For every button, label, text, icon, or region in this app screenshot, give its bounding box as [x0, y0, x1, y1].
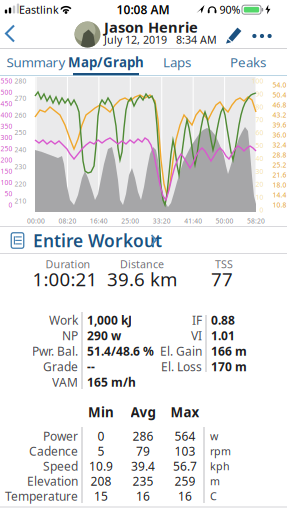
staticText: 00:00: [27, 217, 45, 225]
staticText: --: [87, 358, 95, 374]
staticText: 32.4: [272, 141, 286, 149]
staticText: Pwr. Bal.: [32, 343, 78, 359]
staticText: 39.6 km: [107, 267, 177, 291]
staticText: 235: [132, 473, 153, 489]
staticText: Min: [88, 403, 114, 421]
staticText: 300: [0, 133, 12, 142]
staticText: Max: [170, 403, 199, 421]
staticText: 39.6: [272, 121, 286, 129]
staticText: 41:40: [184, 217, 202, 225]
staticText: Cadence: [29, 443, 78, 459]
staticText: 79: [136, 443, 150, 459]
staticText: 100: [0, 178, 12, 187]
staticText: 51.4/48.6 %: [87, 343, 154, 359]
staticText: 286: [132, 428, 153, 444]
staticText: 50: [4, 189, 12, 198]
staticText: 210: [14, 197, 26, 205]
staticText: 250: [14, 128, 26, 137]
staticText: 165 m/h: [87, 374, 136, 390]
button[interactable]: Peaks: [212, 49, 283, 75]
staticText: 100: [251, 77, 263, 85]
staticText: 230: [14, 162, 26, 171]
staticText: 43.2: [272, 111, 286, 119]
staticText: NP: [62, 327, 78, 343]
button[interactable]: Edit: [221, 22, 247, 48]
staticText: 40: [255, 154, 263, 163]
staticText: 550: [0, 77, 12, 85]
staticText: VI: [191, 327, 202, 343]
staticText: 240: [14, 145, 26, 154]
staticText: 25:00: [121, 217, 139, 225]
staticText: Map/Graph: [68, 53, 144, 71]
staticText: 10: [255, 193, 263, 202]
button[interactable]: Map/Graph: [61, 49, 151, 75]
staticText: 36.0: [272, 131, 286, 139]
staticText: kph: [210, 459, 230, 473]
staticText: 21.6: [272, 171, 286, 179]
staticText: 30: [255, 167, 263, 176]
staticText: 10.9: [89, 458, 113, 474]
staticText: 46.8: [272, 101, 286, 109]
button[interactable]: Laps: [141, 49, 212, 75]
staticText: 0: [8, 200, 12, 209]
staticText: 28.8: [272, 151, 286, 159]
staticText: Speed: [43, 458, 78, 474]
staticText: 16: [136, 488, 150, 504]
staticText: 25.2: [272, 161, 286, 169]
staticText: 290 w: [87, 327, 121, 343]
staticText: Peaks: [230, 53, 266, 71]
staticText: w: [210, 429, 218, 443]
staticText: 259: [174, 473, 195, 489]
staticText: 56.7: [173, 458, 197, 474]
button[interactable]: Summary: [0, 49, 71, 75]
staticText: 20: [255, 180, 263, 189]
staticText: rpm: [210, 444, 231, 458]
button[interactable]: More: [247, 29, 277, 43]
staticText: 80: [255, 102, 263, 111]
staticText: IF: [192, 312, 202, 328]
staticText: 220: [14, 179, 26, 188]
staticText: m: [210, 474, 220, 488]
staticText: 150: [0, 167, 12, 176]
staticText: Temperature: [5, 488, 78, 504]
staticText: 16:40: [90, 217, 108, 225]
staticText: 1.01: [211, 327, 235, 343]
staticText: 54.0: [272, 81, 286, 89]
staticText: Duration: [45, 257, 90, 271]
staticText: 450: [0, 99, 12, 108]
staticText: 60: [255, 128, 263, 137]
staticText: 39.4: [131, 458, 155, 474]
button[interactable]: Entire Workout: [0, 226, 287, 254]
staticText: 208: [90, 473, 111, 489]
staticText: 350: [0, 122, 12, 131]
staticText: 0.88: [211, 312, 235, 328]
staticText: 77: [211, 267, 233, 291]
staticText: 58:20: [247, 217, 265, 225]
staticText: 0: [97, 428, 104, 444]
button[interactable]: Back: [0, 19, 22, 48]
staticText: 564: [174, 428, 195, 444]
staticText: C: [210, 489, 217, 503]
staticText: Elevation: [27, 473, 78, 489]
staticText: 1,000 kJ: [87, 312, 132, 328]
staticText: 260: [14, 111, 26, 120]
staticText: 1:00:21: [32, 267, 97, 291]
staticText: Summary: [6, 53, 65, 71]
staticText: 50: [255, 141, 263, 150]
staticText: El. Gain: [160, 343, 202, 359]
staticText: 16: [178, 488, 192, 504]
staticText: 14.4: [272, 191, 286, 199]
staticText: 103: [174, 443, 195, 459]
staticText: 270: [14, 94, 26, 103]
staticText: 08:20: [58, 217, 76, 225]
staticText: July 12, 2019 8:34 AM: [104, 32, 217, 47]
staticText: 500: [0, 88, 12, 97]
staticText: Avg: [130, 403, 155, 421]
staticText: 90: [255, 89, 263, 98]
staticText: Eastlink: [19, 3, 59, 17]
staticText: 10:08 AM: [116, 2, 169, 18]
staticText: 90%: [219, 3, 240, 17]
staticText: 15: [94, 488, 108, 504]
staticText: Grade: [43, 358, 78, 374]
staticText: 0: [259, 206, 263, 214]
